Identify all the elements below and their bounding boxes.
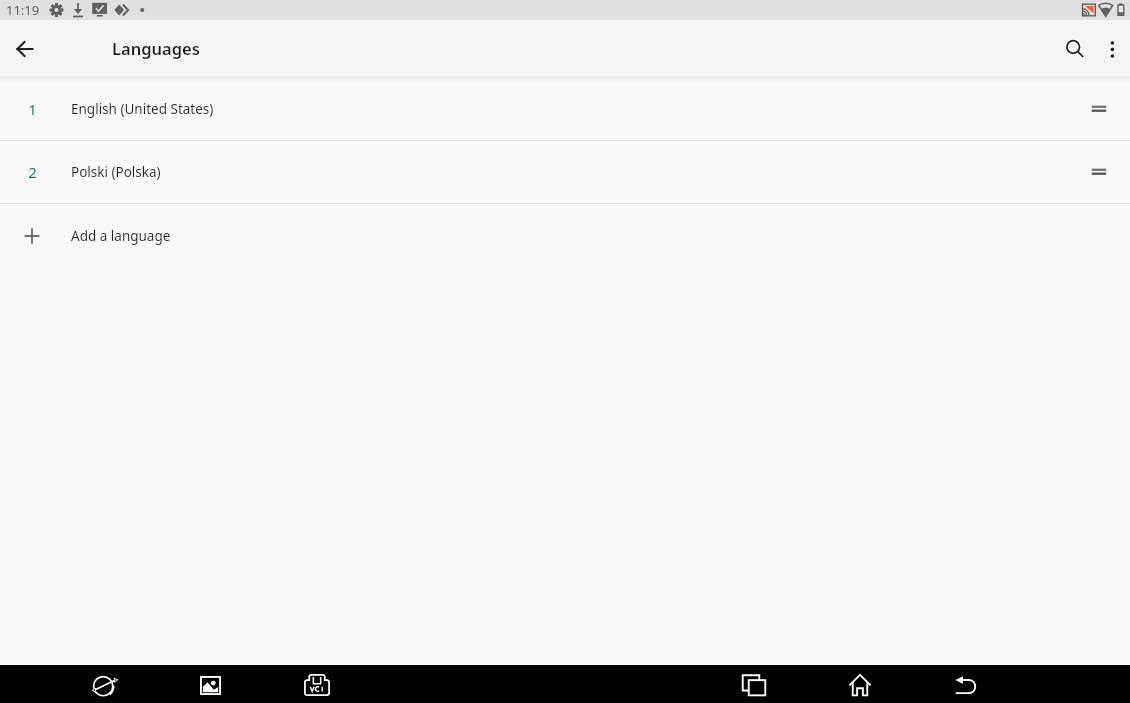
button[interactable]: Navigate up: [8, 32, 42, 66]
button[interactable]: Search: [1055, 29, 1095, 69]
button[interactable]: Recent apps: [735, 666, 773, 703]
button[interactable]: 2: [0, 141, 1130, 203]
staticText: Languages: [112, 37, 200, 59]
button[interactable]: Home: [841, 666, 879, 703]
button[interactable]: Planet: [86, 666, 124, 703]
staticText: 1: [28, 99, 37, 119]
button[interactable]: More options: [1092, 29, 1130, 69]
staticText: 2: [28, 162, 37, 182]
staticText: Polski (Polska): [71, 163, 161, 181]
button[interactable]: Reorder: [1077, 150, 1121, 194]
staticText: English (United States): [71, 100, 214, 118]
button[interactable]: Add a language: [0, 204, 1130, 267]
staticText: Add a language: [71, 227, 171, 245]
button[interactable]: Reorder: [1077, 87, 1121, 131]
staticText: 11:19: [6, 1, 40, 19]
button[interactable]: Back: [947, 666, 985, 703]
button[interactable]: VCI: [298, 666, 336, 703]
button[interactable]: Screenshot: [191, 666, 229, 703]
button[interactable]: 1: [0, 78, 1130, 140]
